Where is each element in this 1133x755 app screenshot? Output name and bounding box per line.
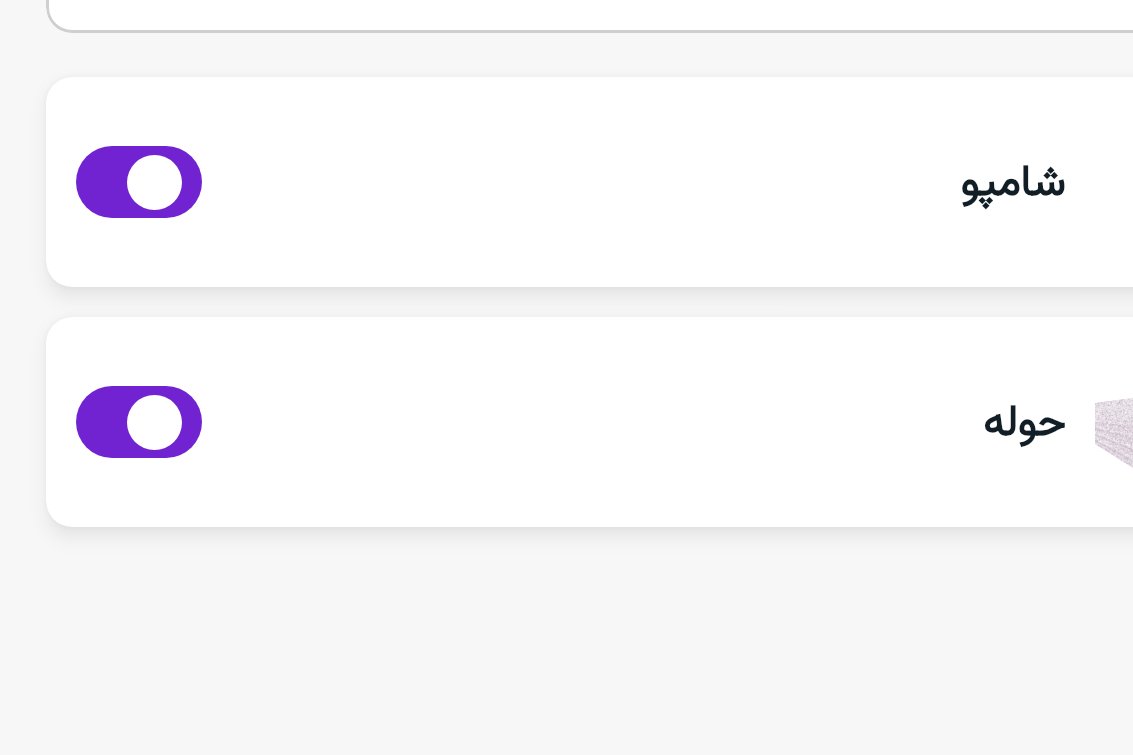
button[interactable]: Previous item xyxy=(46,0,1133,33)
button[interactable]: Toggle item, on xyxy=(46,77,1133,287)
button[interactable]: Toggle item, on xyxy=(76,146,202,218)
staticText: حوله xyxy=(983,391,1066,458)
button[interactable]: Toggle item, on xyxy=(46,317,1133,527)
staticText: شامپو xyxy=(960,151,1066,218)
button[interactable]: Toggle item, on xyxy=(76,386,202,458)
